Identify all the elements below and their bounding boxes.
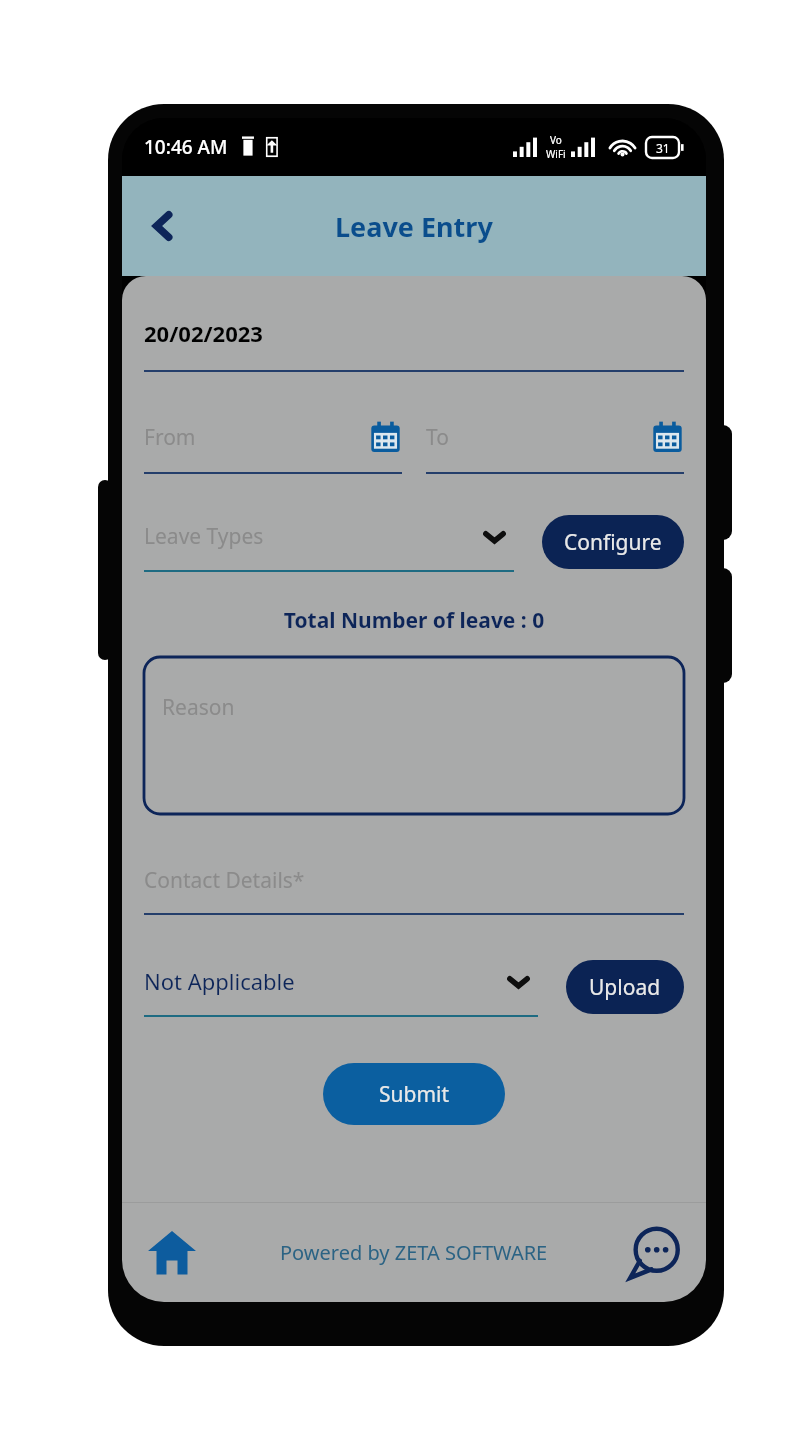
button[interactable]: Configure <box>542 515 684 569</box>
staticText: Contact Details* <box>144 866 305 895</box>
staticText: Powered by ZETA SOFTWARE <box>280 1239 548 1266</box>
button[interactable]: Contact Details* <box>144 866 684 895</box>
button[interactable]: Leave Types <box>144 512 514 560</box>
staticText: Configure <box>564 528 662 557</box>
staticText: Upload <box>589 973 661 1002</box>
staticText: 10:46 AM <box>144 134 228 160</box>
staticText: WiFi <box>546 147 566 161</box>
staticText: Total Number of leave : 0 <box>144 606 684 635</box>
staticText: Vo <box>550 133 562 147</box>
staticText: Reason <box>162 693 235 722</box>
button[interactable]: From <box>144 412 402 462</box>
staticText: Submit <box>379 1080 450 1109</box>
button[interactable]: Home <box>142 1223 202 1283</box>
button[interactable]: Chat support <box>622 1221 686 1285</box>
button[interactable]: Reason <box>144 657 684 814</box>
button[interactable]: Upload <box>566 960 684 1014</box>
button[interactable]: To <box>426 412 684 462</box>
button[interactable]: Back <box>134 197 192 255</box>
staticText: Leave Entry <box>335 208 493 245</box>
button[interactable]: Not Applicable <box>144 957 538 1005</box>
staticText: Leave Types <box>144 522 481 551</box>
staticText: 31 <box>656 140 670 156</box>
staticText: To <box>426 423 651 452</box>
staticText: Not Applicable <box>144 966 505 996</box>
button[interactable]: Submit <box>323 1063 505 1125</box>
staticText: From <box>144 423 369 452</box>
staticText: 20/02/2023 <box>144 318 263 348</box>
